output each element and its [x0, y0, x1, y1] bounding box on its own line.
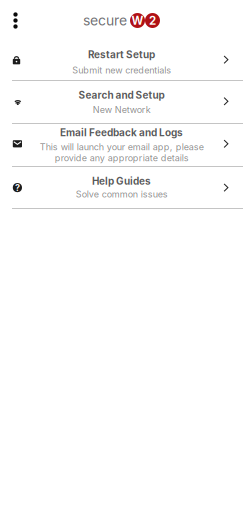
button[interactable]: More options — [5, 2, 26, 35]
button[interactable]: Help Guides — [0, 167, 243, 208]
staticText: secure — [83, 12, 127, 29]
staticText: Restart Setup — [88, 48, 155, 61]
staticText: ? — [15, 182, 20, 193]
staticText: Solve common issues — [75, 189, 167, 200]
button[interactable]: Email Feedback and Logs — [0, 124, 243, 166]
button[interactable]: Restart Setup — [0, 38, 243, 80]
staticText: W — [131, 14, 143, 27]
staticText: Submit new credentials — [72, 65, 171, 76]
staticText: Help Guides — [92, 175, 151, 187]
staticText: Email Feedback and Logs — [60, 126, 183, 139]
staticText: New Network — [92, 104, 150, 115]
staticText: Search and Setup — [78, 89, 164, 101]
staticText: 2 — [149, 14, 156, 27]
button[interactable]: Search and Setup — [0, 81, 243, 123]
staticText: This will launch your email app, please … — [39, 142, 203, 163]
